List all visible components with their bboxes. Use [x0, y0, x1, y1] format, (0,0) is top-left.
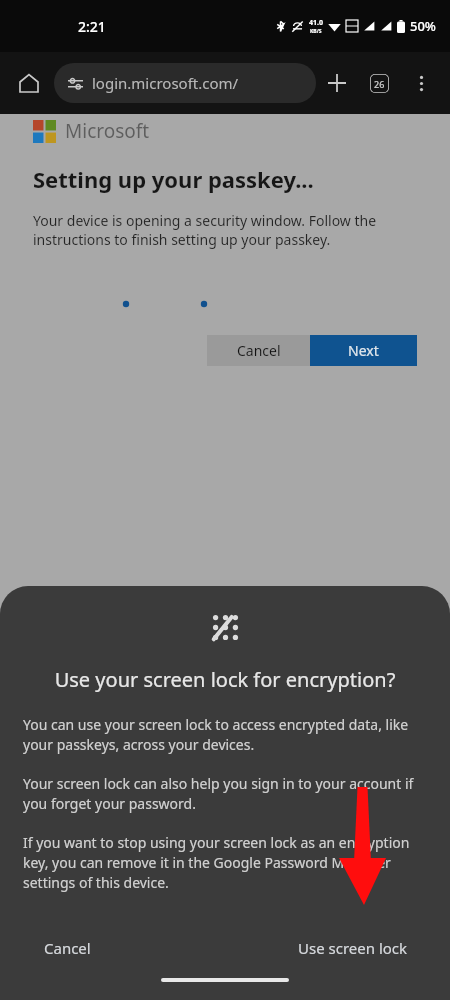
- button[interactable]: Home: [8, 62, 50, 104]
- button[interactable]: New tab: [316, 62, 358, 104]
- staticText: Microsoft: [65, 118, 150, 144]
- staticText: Next: [348, 341, 379, 360]
- staticText: Setting up your passkey...: [33, 164, 314, 194]
- staticText: login.microsoft.com/consumer: [92, 73, 304, 93]
- staticText: 50%: [410, 17, 436, 35]
- staticText: KB/S: [310, 28, 322, 35]
- staticText: 41.0: [309, 18, 323, 28]
- staticText: If you want to stop using your screen lo…: [23, 833, 427, 892]
- staticText: Your device is opening a security window…: [33, 211, 430, 249]
- staticText: You can use your screen lock to access e…: [23, 715, 427, 754]
- button[interactable]: Cancel: [207, 335, 310, 366]
- button[interactable]: Next: [310, 335, 417, 366]
- button[interactable]: Use screen lock: [280, 928, 426, 968]
- button[interactable]: More options: [400, 62, 442, 104]
- staticText: Cancel: [44, 938, 91, 958]
- staticText: Your screen lock can also help you sign …: [23, 774, 427, 813]
- button[interactable]: Tabs, 26 open: [358, 62, 400, 104]
- button[interactable]: login.microsoft.com/consumer: [54, 63, 316, 103]
- staticText: Use your screen lock for encryption?: [16, 666, 434, 693]
- staticText: 2:21: [78, 17, 106, 36]
- staticText: Cancel: [237, 341, 281, 360]
- staticText: 26: [374, 78, 385, 90]
- button[interactable]: Cancel: [24, 928, 111, 968]
- staticText: Use screen lock: [298, 938, 408, 958]
